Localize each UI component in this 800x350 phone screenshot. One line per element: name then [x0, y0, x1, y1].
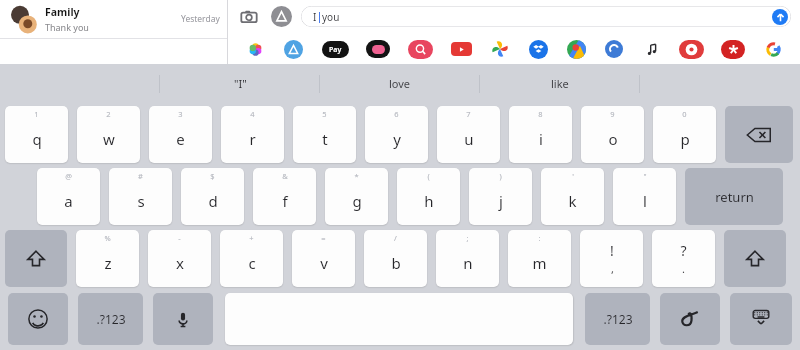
staticText: 6	[394, 109, 399, 119]
staticText: f	[282, 191, 288, 211]
button[interactable]: Shift	[724, 230, 786, 287]
staticText: c	[248, 253, 256, 273]
button[interactable]: Shift	[5, 230, 67, 287]
button[interactable]: Hide keyboard	[730, 293, 792, 345]
button[interactable]	[489, 38, 511, 60]
button[interactable]: '	[541, 168, 604, 225]
staticText: w	[103, 129, 115, 149]
button[interactable]: $	[181, 168, 244, 225]
button[interactable]: 8	[509, 106, 572, 163]
staticText: h	[424, 191, 434, 211]
button[interactable]: Camera	[237, 5, 261, 29]
button[interactable]: Send	[772, 9, 788, 25]
button[interactable]: 2	[77, 106, 140, 163]
staticText: 7	[466, 109, 471, 119]
button[interactable]: !	[580, 230, 643, 287]
staticText: (	[427, 171, 430, 181]
button[interactable]: @	[37, 168, 100, 225]
staticText: l	[643, 191, 647, 211]
button[interactable]: return	[685, 168, 783, 225]
button[interactable]: 9	[581, 106, 644, 163]
button[interactable]: Dictation	[153, 293, 213, 345]
staticText: s	[137, 191, 145, 211]
button[interactable]: 5	[293, 106, 356, 163]
button[interactable]: &	[253, 168, 316, 225]
button[interactable]: )	[469, 168, 532, 225]
staticText: 2	[106, 109, 111, 119]
button[interactable]: (	[397, 168, 460, 225]
staticText: Thank you	[45, 21, 89, 33]
button[interactable]: .?123	[585, 293, 650, 345]
button[interactable]	[407, 36, 433, 62]
button[interactable]: 1	[5, 106, 68, 163]
staticText: .	[682, 261, 685, 276]
staticText: &	[282, 171, 288, 181]
staticText: d	[208, 191, 218, 211]
staticText: 9	[610, 109, 615, 119]
button[interactable]: 4	[221, 106, 284, 163]
button[interactable]: I	[301, 6, 791, 27]
staticText: g	[352, 191, 362, 211]
staticText: "I"	[234, 76, 247, 91]
staticText: -	[178, 233, 181, 243]
button[interactable]: /	[364, 230, 427, 287]
button[interactable]: *	[325, 168, 388, 225]
staticText: Pay	[329, 45, 342, 55]
button[interactable]: love	[320, 64, 480, 103]
staticText: k	[568, 191, 577, 211]
button[interactable]: Pay	[320, 34, 350, 64]
button[interactable]: Emoji	[8, 293, 68, 345]
button[interactable]	[678, 36, 704, 62]
staticText: t	[322, 129, 328, 149]
button[interactable]: %	[76, 230, 139, 287]
button[interactable]: +	[220, 230, 283, 287]
staticText: 3	[178, 109, 183, 119]
staticText: o	[608, 129, 618, 149]
button[interactable]: Scribble	[660, 293, 720, 345]
button[interactable]	[244, 38, 266, 60]
staticText: .?123	[603, 311, 633, 327]
staticText: '	[572, 171, 574, 181]
button[interactable]	[603, 38, 625, 60]
staticText: "	[643, 171, 647, 181]
button[interactable]	[527, 38, 549, 60]
button[interactable]: 7	[437, 106, 500, 163]
button[interactable]	[641, 38, 663, 60]
button[interactable]: Family	[0, 0, 228, 38]
button[interactable]: "	[613, 168, 676, 225]
staticText: ?	[680, 241, 687, 260]
button[interactable]	[565, 38, 587, 60]
staticText: Yesterday	[181, 13, 220, 25]
staticText: y	[393, 129, 401, 149]
button[interactable]: Backspace	[725, 106, 793, 163]
button[interactable]: "I"	[160, 64, 320, 103]
button[interactable]: ?	[652, 230, 715, 287]
button[interactable]: :	[508, 230, 571, 287]
button[interactable]: =	[292, 230, 355, 287]
button[interactable]	[720, 36, 746, 62]
staticText: 0	[682, 109, 687, 119]
button[interactable]: #	[109, 168, 172, 225]
button[interactable]: App Store	[271, 6, 292, 27]
button[interactable]: 0	[653, 106, 716, 163]
button[interactable]: -	[148, 230, 211, 287]
button[interactable]: .?123	[78, 293, 143, 345]
staticText: j	[499, 191, 503, 211]
button[interactable]	[365, 36, 391, 62]
button[interactable]	[449, 37, 473, 61]
button[interactable]: ;	[436, 230, 499, 287]
staticText: #	[138, 171, 143, 181]
staticText: ,	[611, 261, 614, 276]
button[interactable]: 6	[365, 106, 428, 163]
staticText: )	[499, 171, 502, 181]
staticText: you	[322, 10, 340, 24]
button[interactable]	[762, 38, 784, 60]
button[interactable]	[282, 38, 304, 60]
staticText: like	[551, 76, 569, 91]
button[interactable]: 3	[149, 106, 212, 163]
staticText: a	[64, 191, 73, 211]
button[interactable]: like	[480, 64, 640, 103]
